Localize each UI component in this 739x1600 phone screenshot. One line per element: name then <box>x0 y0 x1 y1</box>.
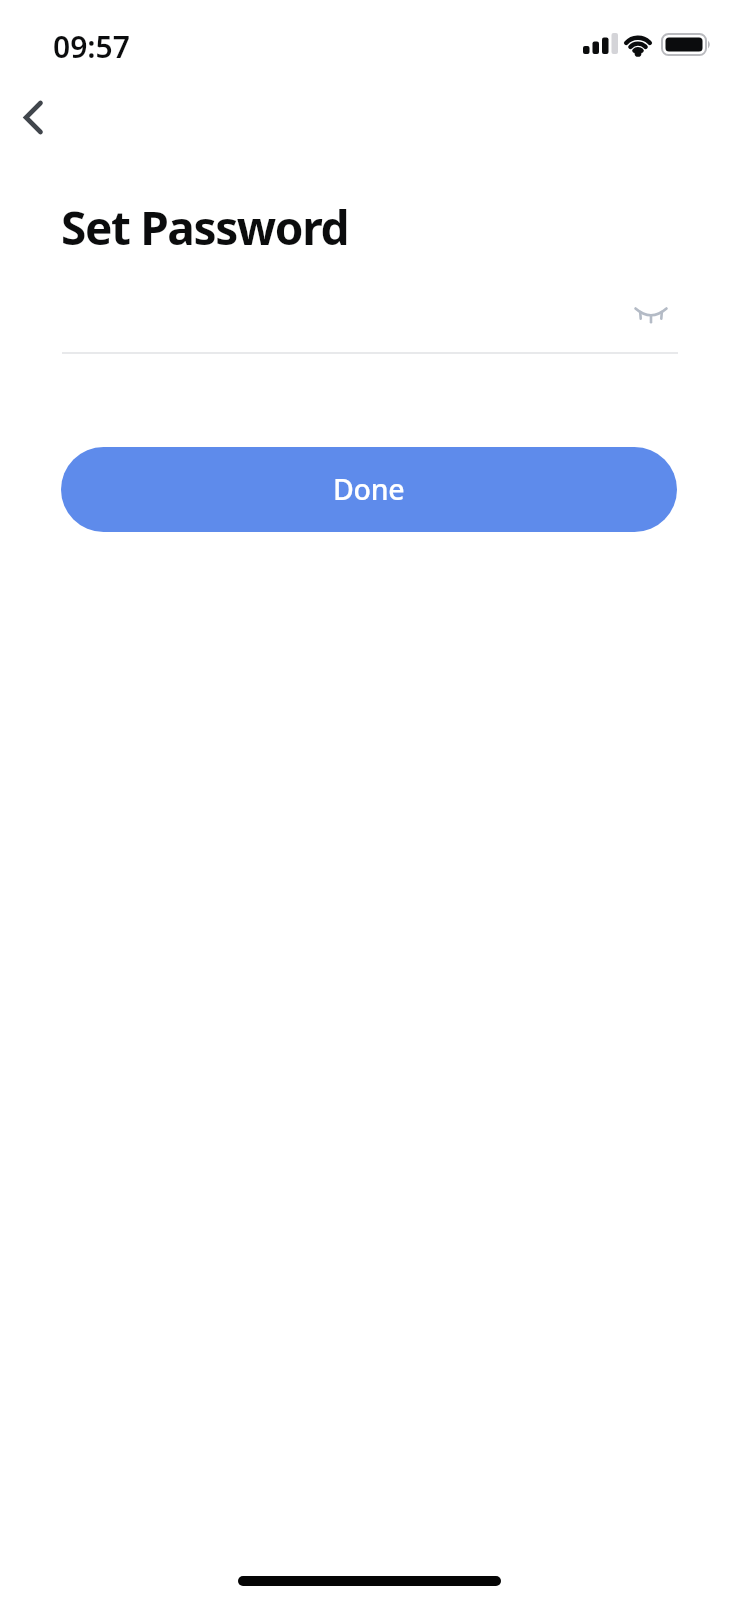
button[interactable] <box>12 98 56 142</box>
staticText: Done <box>333 470 405 509</box>
staticText: 09:57 <box>53 26 130 67</box>
button[interactable] <box>629 295 673 339</box>
staticText: Set Password <box>61 196 349 259</box>
button[interactable]: Done <box>61 447 677 532</box>
